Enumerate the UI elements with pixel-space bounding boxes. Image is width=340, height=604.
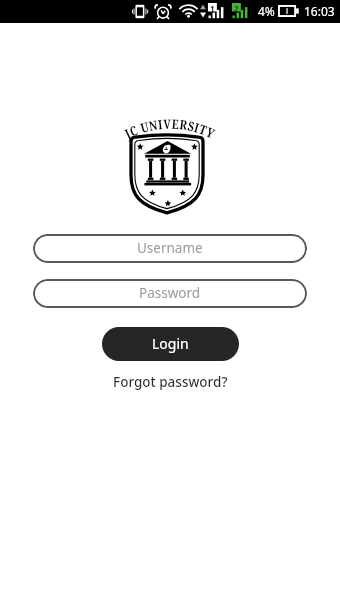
staticText: 2 <box>234 3 239 12</box>
button[interactable]: Forgot password? <box>0 372 340 396</box>
staticText: Login <box>152 334 189 353</box>
button[interactable]: Login <box>102 327 239 361</box>
staticText: 16:03 <box>304 3 335 19</box>
staticText: 4% <box>258 3 275 19</box>
staticText: Username <box>137 239 203 257</box>
button[interactable]: Username <box>33 234 307 263</box>
staticText: Forgot password? <box>113 373 228 391</box>
staticText: 1 <box>210 3 215 12</box>
button[interactable]: Password <box>33 279 307 308</box>
staticText: Password <box>139 284 201 302</box>
